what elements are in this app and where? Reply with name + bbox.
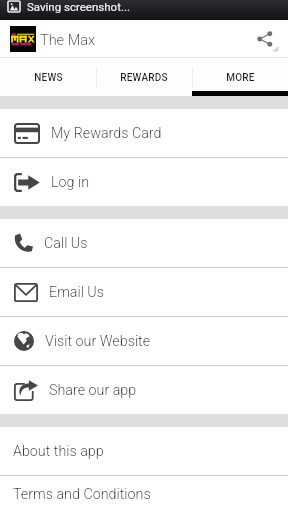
button[interactable]: About this app	[13, 427, 288, 475]
staticText: Terms and Conditions	[13, 486, 151, 503]
staticText: Visit our Website	[45, 333, 151, 350]
button[interactable]: Email Us	[14, 268, 288, 316]
button[interactable]: Log in	[14, 158, 288, 206]
button[interactable]: MORE	[192, 58, 288, 96]
staticText: REWARDS	[120, 72, 168, 84]
staticText: MORE	[226, 72, 255, 84]
staticText: About this app	[13, 443, 104, 460]
button[interactable]: Share our app	[14, 366, 288, 414]
button[interactable]: Share	[247, 20, 283, 58]
staticText: Call Us	[44, 235, 88, 252]
button[interactable]: Call Us	[14, 219, 288, 267]
staticText: Email Us	[49, 284, 105, 301]
button[interactable]: Terms and Conditions	[13, 476, 288, 512]
button[interactable]: Visit our Website	[14, 317, 288, 365]
staticText: My Rewards Card	[51, 125, 162, 142]
button[interactable]: REWARDS	[96, 58, 192, 96]
staticText: Share our app	[49, 382, 137, 399]
staticText: Log in	[51, 174, 90, 191]
staticText: Saving screenshot...	[27, 0, 131, 13]
button[interactable]: NEWS	[0, 58, 96, 96]
staticText: The Max	[40, 32, 96, 49]
button[interactable]: My Rewards Card	[14, 109, 288, 157]
staticText: NEWS	[34, 72, 63, 84]
